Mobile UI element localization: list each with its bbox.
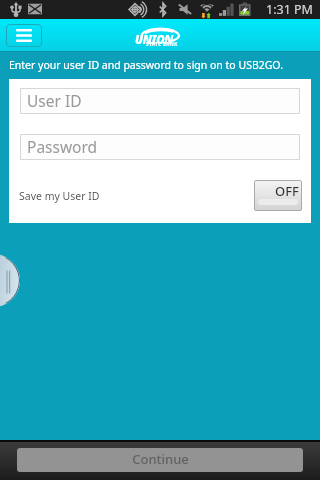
staticText: 1:31 PM	[266, 1, 313, 18]
staticText: User ID	[27, 90, 82, 111]
staticText: STATE BANK	[146, 41, 178, 47]
button[interactable]: Menu	[6, 24, 42, 47]
staticText: Continue	[132, 450, 189, 468]
staticText: UNION	[135, 32, 174, 48]
button[interactable]: Open navigation drawer	[0, 254, 20, 307]
button[interactable]: Save my User ID toggle, off	[254, 180, 302, 211]
staticText: Save my User ID	[19, 189, 100, 203]
button[interactable]: Continue	[17, 448, 303, 472]
staticText: Enter your user ID and password to sign …	[9, 58, 283, 72]
button[interactable]: Password	[20, 134, 300, 160]
staticText: OFF	[275, 182, 299, 200]
button[interactable]: User ID	[20, 88, 300, 114]
staticText: Password	[27, 136, 98, 157]
